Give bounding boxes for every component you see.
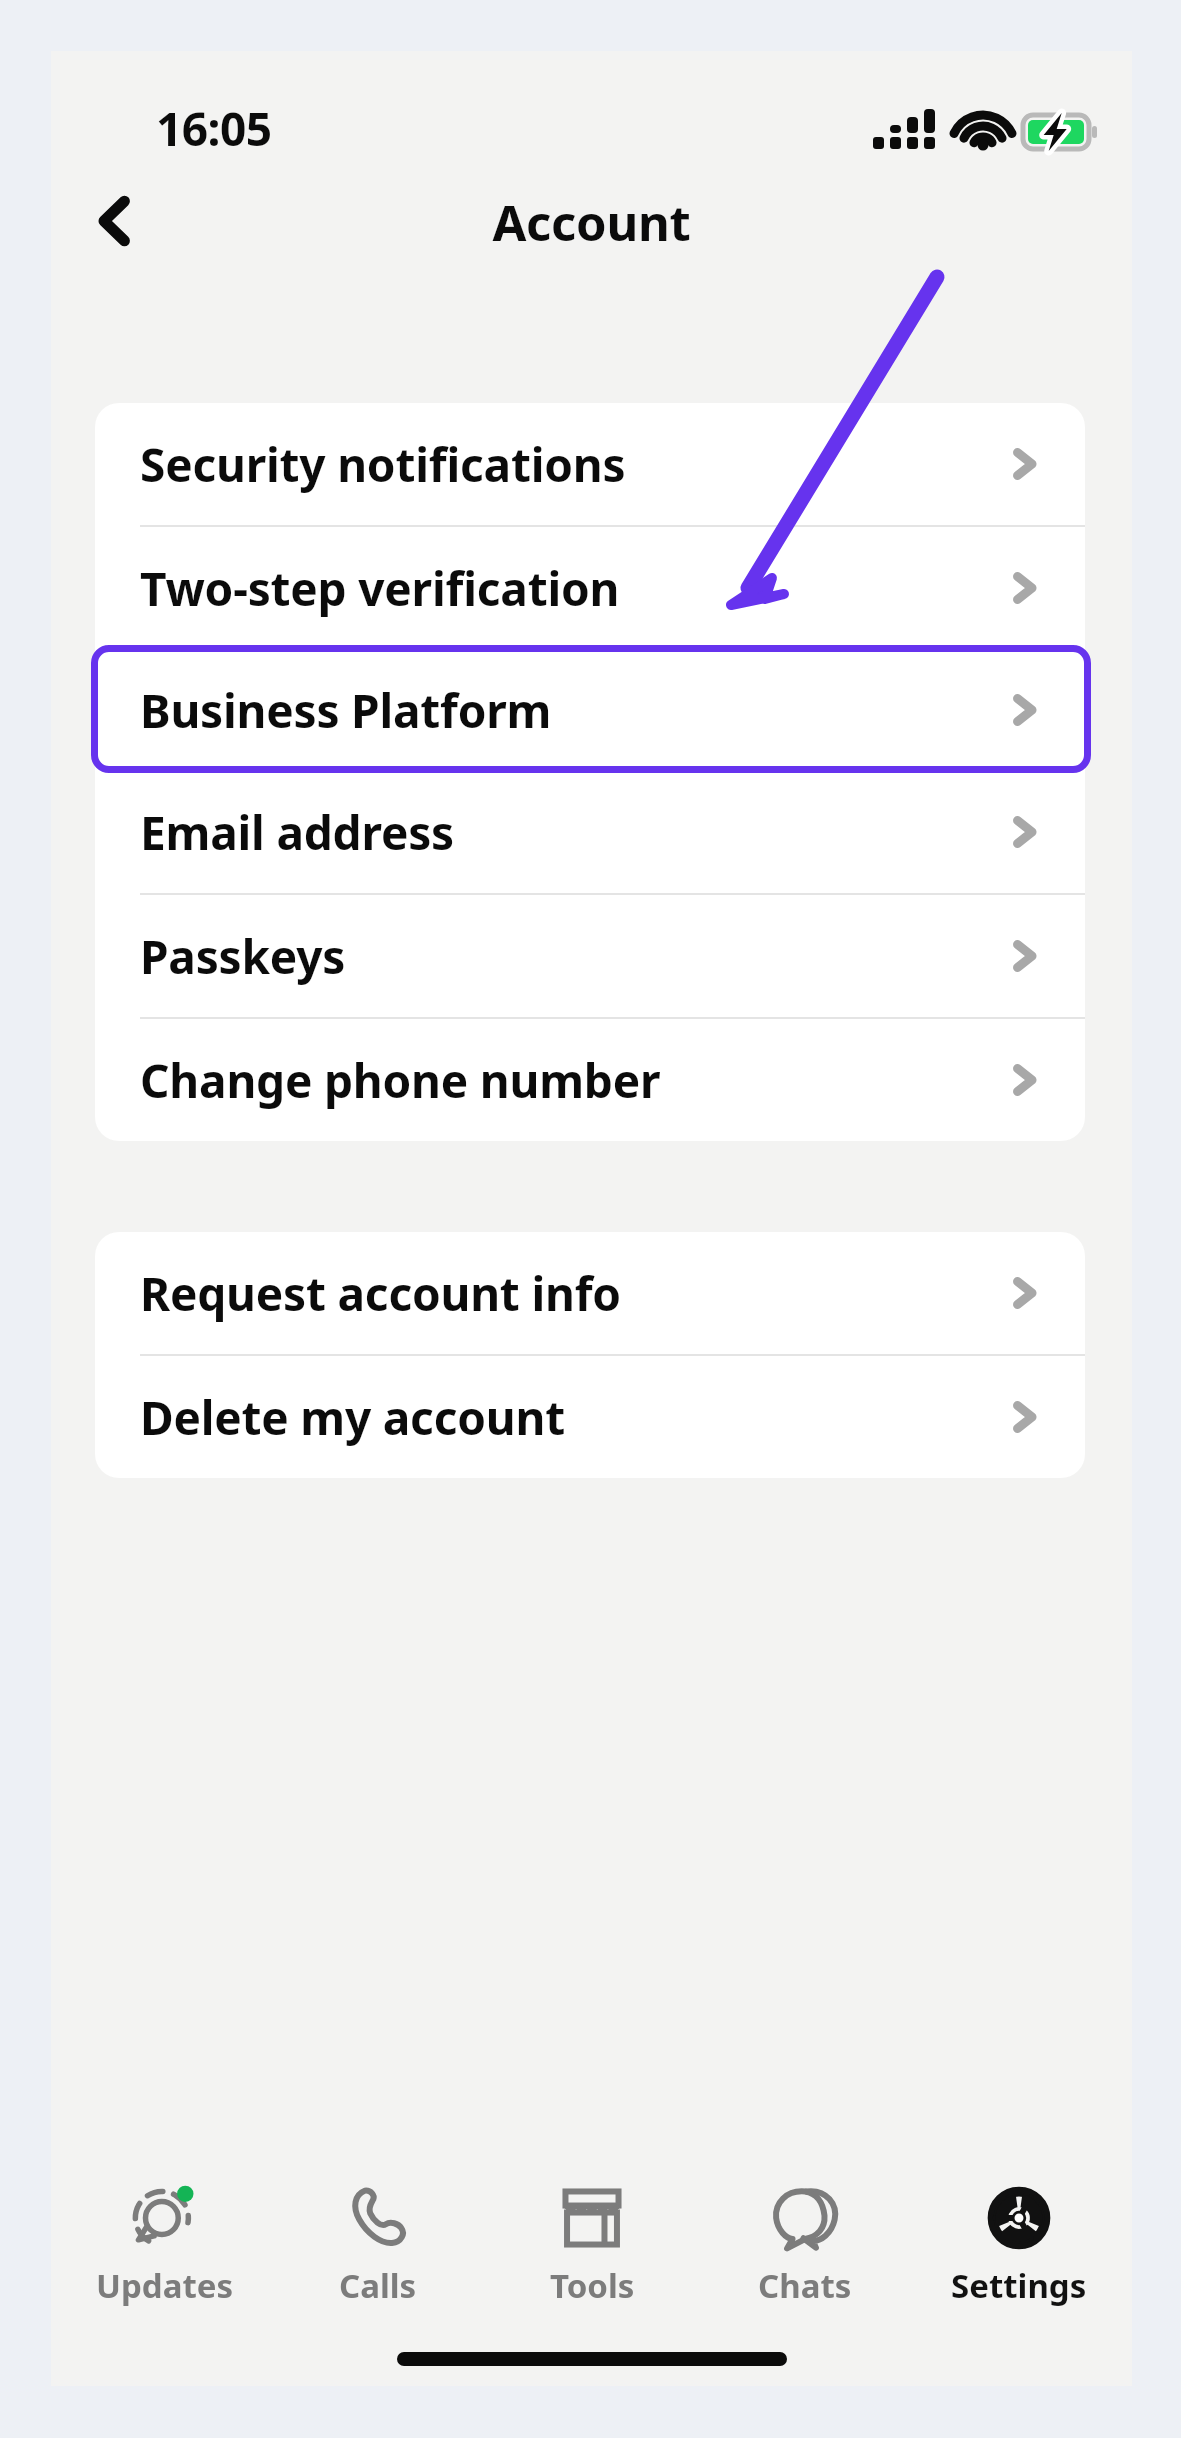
button[interactable]: Business Platform [95, 649, 1085, 771]
button[interactable]: Security notifications [95, 403, 1085, 525]
staticText: Business Platform [140, 679, 1003, 742]
button[interactable]: Two-step verification [95, 527, 1085, 649]
button[interactable]: Passkeys [95, 895, 1085, 1017]
staticText: Delete my account [140, 1386, 1003, 1449]
button[interactable]: Change phone number [95, 1019, 1085, 1141]
staticText: Request account info [140, 1262, 1003, 1325]
button[interactable]: Chats [705, 2173, 905, 2308]
staticText: Email address [140, 801, 1003, 864]
staticText: Change phone number [140, 1049, 1003, 1112]
staticText: Passkeys [140, 925, 1003, 988]
button[interactable]: Delete my account [95, 1356, 1085, 1478]
staticText: Calls [339, 2263, 417, 2308]
button[interactable]: Request account info [95, 1232, 1085, 1354]
staticText: Updates [96, 2263, 234, 2308]
button[interactable]: Updates [65, 2173, 265, 2308]
button[interactable]: Back [71, 176, 161, 266]
button[interactable]: Tools [492, 2173, 692, 2308]
staticText: 16:05 [156, 97, 272, 160]
staticText: Settings [951, 2263, 1087, 2308]
button[interactable]: Calls [278, 2173, 478, 2308]
staticText: Tools [550, 2263, 635, 2308]
staticText: Security notifications [140, 433, 1003, 496]
staticText: Chats [758, 2263, 852, 2308]
button[interactable]: Email address [95, 771, 1085, 893]
staticText: Two-step verification [140, 557, 1003, 620]
staticText: Account [51, 189, 1132, 256]
button[interactable]: Settings [919, 2173, 1119, 2308]
